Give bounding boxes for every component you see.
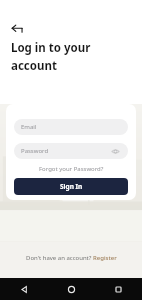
staticText: Log in to your bbox=[11, 40, 91, 56]
button[interactable]: Show password bbox=[109, 145, 121, 157]
button[interactable]: Recent apps bbox=[95, 278, 142, 300]
staticText: Forgot your Password? bbox=[39, 165, 104, 173]
button[interactable]: Forgot your Password? bbox=[37, 164, 106, 174]
button[interactable]: Password bbox=[14, 143, 128, 159]
staticText: Password bbox=[21, 147, 49, 155]
staticText: Don't have an account? bbox=[26, 254, 93, 262]
staticText: Email bbox=[21, 123, 37, 131]
staticText: Register bbox=[93, 254, 117, 262]
staticText: account bbox=[11, 58, 57, 74]
button[interactable]: Email bbox=[14, 119, 128, 135]
button[interactable]: Back bbox=[0, 278, 48, 300]
button[interactable]: Sign In bbox=[14, 178, 128, 195]
button[interactable]: Don't have an account? bbox=[22, 252, 121, 264]
button[interactable]: Home bbox=[48, 278, 95, 300]
button[interactable]: Back bbox=[6, 17, 28, 39]
staticText: Sign In bbox=[60, 182, 83, 191]
